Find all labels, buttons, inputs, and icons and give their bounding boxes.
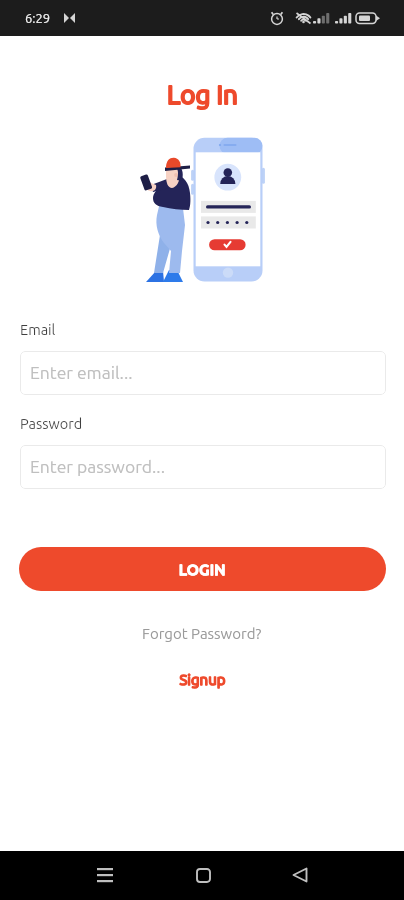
- staticText: Enter email...: [30, 363, 133, 383]
- button[interactable]: Recent apps: [81, 851, 129, 899]
- staticText: Log In: [167, 80, 238, 109]
- button[interactable]: Enter email...: [20, 351, 386, 395]
- staticText: Forgot Password?: [142, 625, 262, 642]
- staticText: Signup: [179, 671, 226, 688]
- button[interactable]: Enter password...: [20, 445, 386, 489]
- button[interactable]: Back: [276, 851, 324, 899]
- staticText: Log In: [167, 80, 238, 109]
- button[interactable]: Signup: [0, 667, 404, 691]
- staticText: Email: [20, 321, 56, 337]
- staticText: 6:29: [25, 11, 51, 26]
- staticText: Enter password...: [30, 457, 165, 477]
- staticText: LOGIN: [179, 561, 226, 578]
- button[interactable]: LOGIN: [19, 547, 386, 591]
- staticText: Password: [20, 415, 83, 431]
- button[interactable]: Forgot Password?: [0, 621, 404, 645]
- staticText: LOGIN: [179, 561, 226, 578]
- button[interactable]: Home: [179, 851, 227, 899]
- staticText: Signup: [179, 671, 226, 688]
